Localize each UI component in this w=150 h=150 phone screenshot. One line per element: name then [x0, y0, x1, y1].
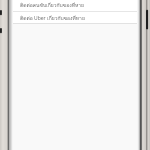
- button[interactable]: ติดต่อ Uber เกี่ยวกับของที่หาย: [13, 12, 137, 23]
- staticText: ติดต่อคนขับเกี่ยวกับของที่หาย: [20, 1, 84, 9]
- staticText: ติดต่อ Uber เกี่ยวกับของที่หาย: [20, 14, 85, 22]
- button[interactable]: ติดต่อคนขับเกี่ยวกับของที่หาย: [13, 0, 137, 11]
